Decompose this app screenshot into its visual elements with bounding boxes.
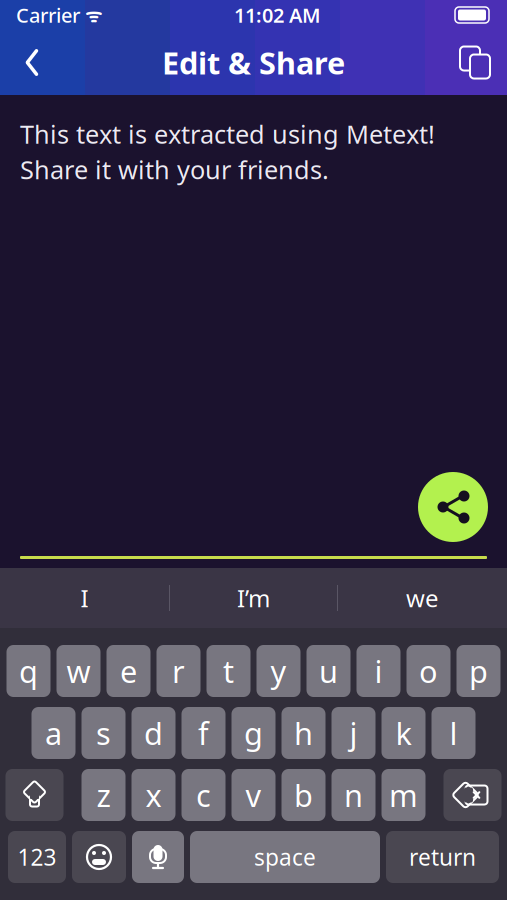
button[interactable]: return bbox=[386, 831, 499, 883]
button[interactable]: Share bbox=[418, 472, 488, 542]
staticText: f bbox=[198, 713, 209, 753]
staticText: This text is extracted using Metext! bbox=[20, 117, 435, 151]
staticText: y bbox=[270, 651, 286, 691]
staticText: b bbox=[294, 775, 313, 815]
button[interactable]: we bbox=[338, 568, 507, 628]
button[interactable]: m bbox=[381, 769, 425, 821]
staticText: 11:02 AM bbox=[234, 2, 321, 28]
button[interactable]: z bbox=[81, 769, 125, 821]
button[interactable]: e bbox=[106, 645, 150, 697]
staticText: o bbox=[419, 651, 438, 691]
button[interactable]: i bbox=[356, 645, 400, 697]
staticText: I bbox=[80, 582, 88, 614]
button[interactable]: u bbox=[306, 645, 350, 697]
button[interactable]: t bbox=[206, 645, 250, 697]
staticText: p bbox=[469, 651, 488, 691]
button[interactable]: p bbox=[456, 645, 500, 697]
button[interactable]: Emoji bbox=[72, 831, 126, 883]
button[interactable]: l bbox=[431, 707, 475, 759]
button[interactable]: s bbox=[81, 707, 125, 759]
button[interactable]: d bbox=[131, 707, 175, 759]
staticText: we bbox=[406, 582, 439, 614]
button[interactable]: Back bbox=[4, 32, 60, 92]
staticText: z bbox=[96, 775, 110, 815]
staticText: k bbox=[395, 713, 411, 753]
button[interactable]: c bbox=[181, 769, 225, 821]
button[interactable]: g bbox=[231, 707, 275, 759]
staticText: h bbox=[294, 713, 313, 753]
button[interactable]: a bbox=[31, 707, 75, 759]
button[interactable]: Copy bbox=[447, 32, 503, 92]
staticText: v bbox=[245, 775, 261, 815]
staticText: e bbox=[120, 651, 137, 691]
staticText: r bbox=[172, 651, 185, 691]
button[interactable]: h bbox=[281, 707, 325, 759]
button[interactable]: w bbox=[56, 645, 100, 697]
button[interactable]: space bbox=[190, 831, 380, 883]
staticText: w bbox=[66, 651, 90, 691]
staticText: Edit & Share bbox=[162, 42, 345, 83]
button[interactable]: n bbox=[331, 769, 375, 821]
staticText: ᯤ bbox=[80, 3, 102, 27]
button[interactable]: q bbox=[6, 645, 50, 697]
button[interactable]: o bbox=[406, 645, 450, 697]
button[interactable]: x bbox=[131, 769, 175, 821]
button[interactable]: v bbox=[231, 769, 275, 821]
staticText: d bbox=[144, 713, 163, 753]
button[interactable]: Dictate bbox=[132, 831, 184, 883]
button[interactable]: y bbox=[256, 645, 300, 697]
staticText: c bbox=[196, 775, 211, 815]
staticText: i bbox=[374, 651, 382, 691]
staticText: m bbox=[389, 775, 418, 815]
staticText: n bbox=[344, 775, 363, 815]
staticText: u bbox=[319, 651, 338, 691]
button[interactable]: I’m bbox=[170, 568, 337, 628]
staticText: q bbox=[19, 651, 38, 691]
staticText: I’m bbox=[237, 582, 270, 614]
button[interactable]: b bbox=[281, 769, 325, 821]
staticText: space bbox=[254, 842, 316, 872]
button[interactable]: Shift bbox=[5, 769, 63, 821]
button[interactable]: r bbox=[156, 645, 200, 697]
staticText: Carrier bbox=[16, 2, 80, 28]
staticText: a bbox=[45, 713, 62, 753]
staticText: x bbox=[145, 775, 161, 815]
staticText: s bbox=[96, 713, 111, 753]
button[interactable]: k bbox=[381, 707, 425, 759]
staticText: g bbox=[244, 713, 263, 753]
button[interactable]: 123 bbox=[8, 831, 66, 883]
staticText: j bbox=[349, 713, 357, 753]
staticText: 123 bbox=[17, 842, 56, 872]
button[interactable]: Delete bbox=[443, 769, 501, 821]
staticText: l bbox=[449, 713, 457, 753]
staticText: t bbox=[223, 651, 234, 691]
staticText: return bbox=[409, 842, 476, 872]
button[interactable]: j bbox=[331, 707, 375, 759]
staticText: Share it with your friends. bbox=[20, 153, 329, 186]
button[interactable]: f bbox=[181, 707, 225, 759]
button[interactable]: I bbox=[0, 568, 169, 628]
